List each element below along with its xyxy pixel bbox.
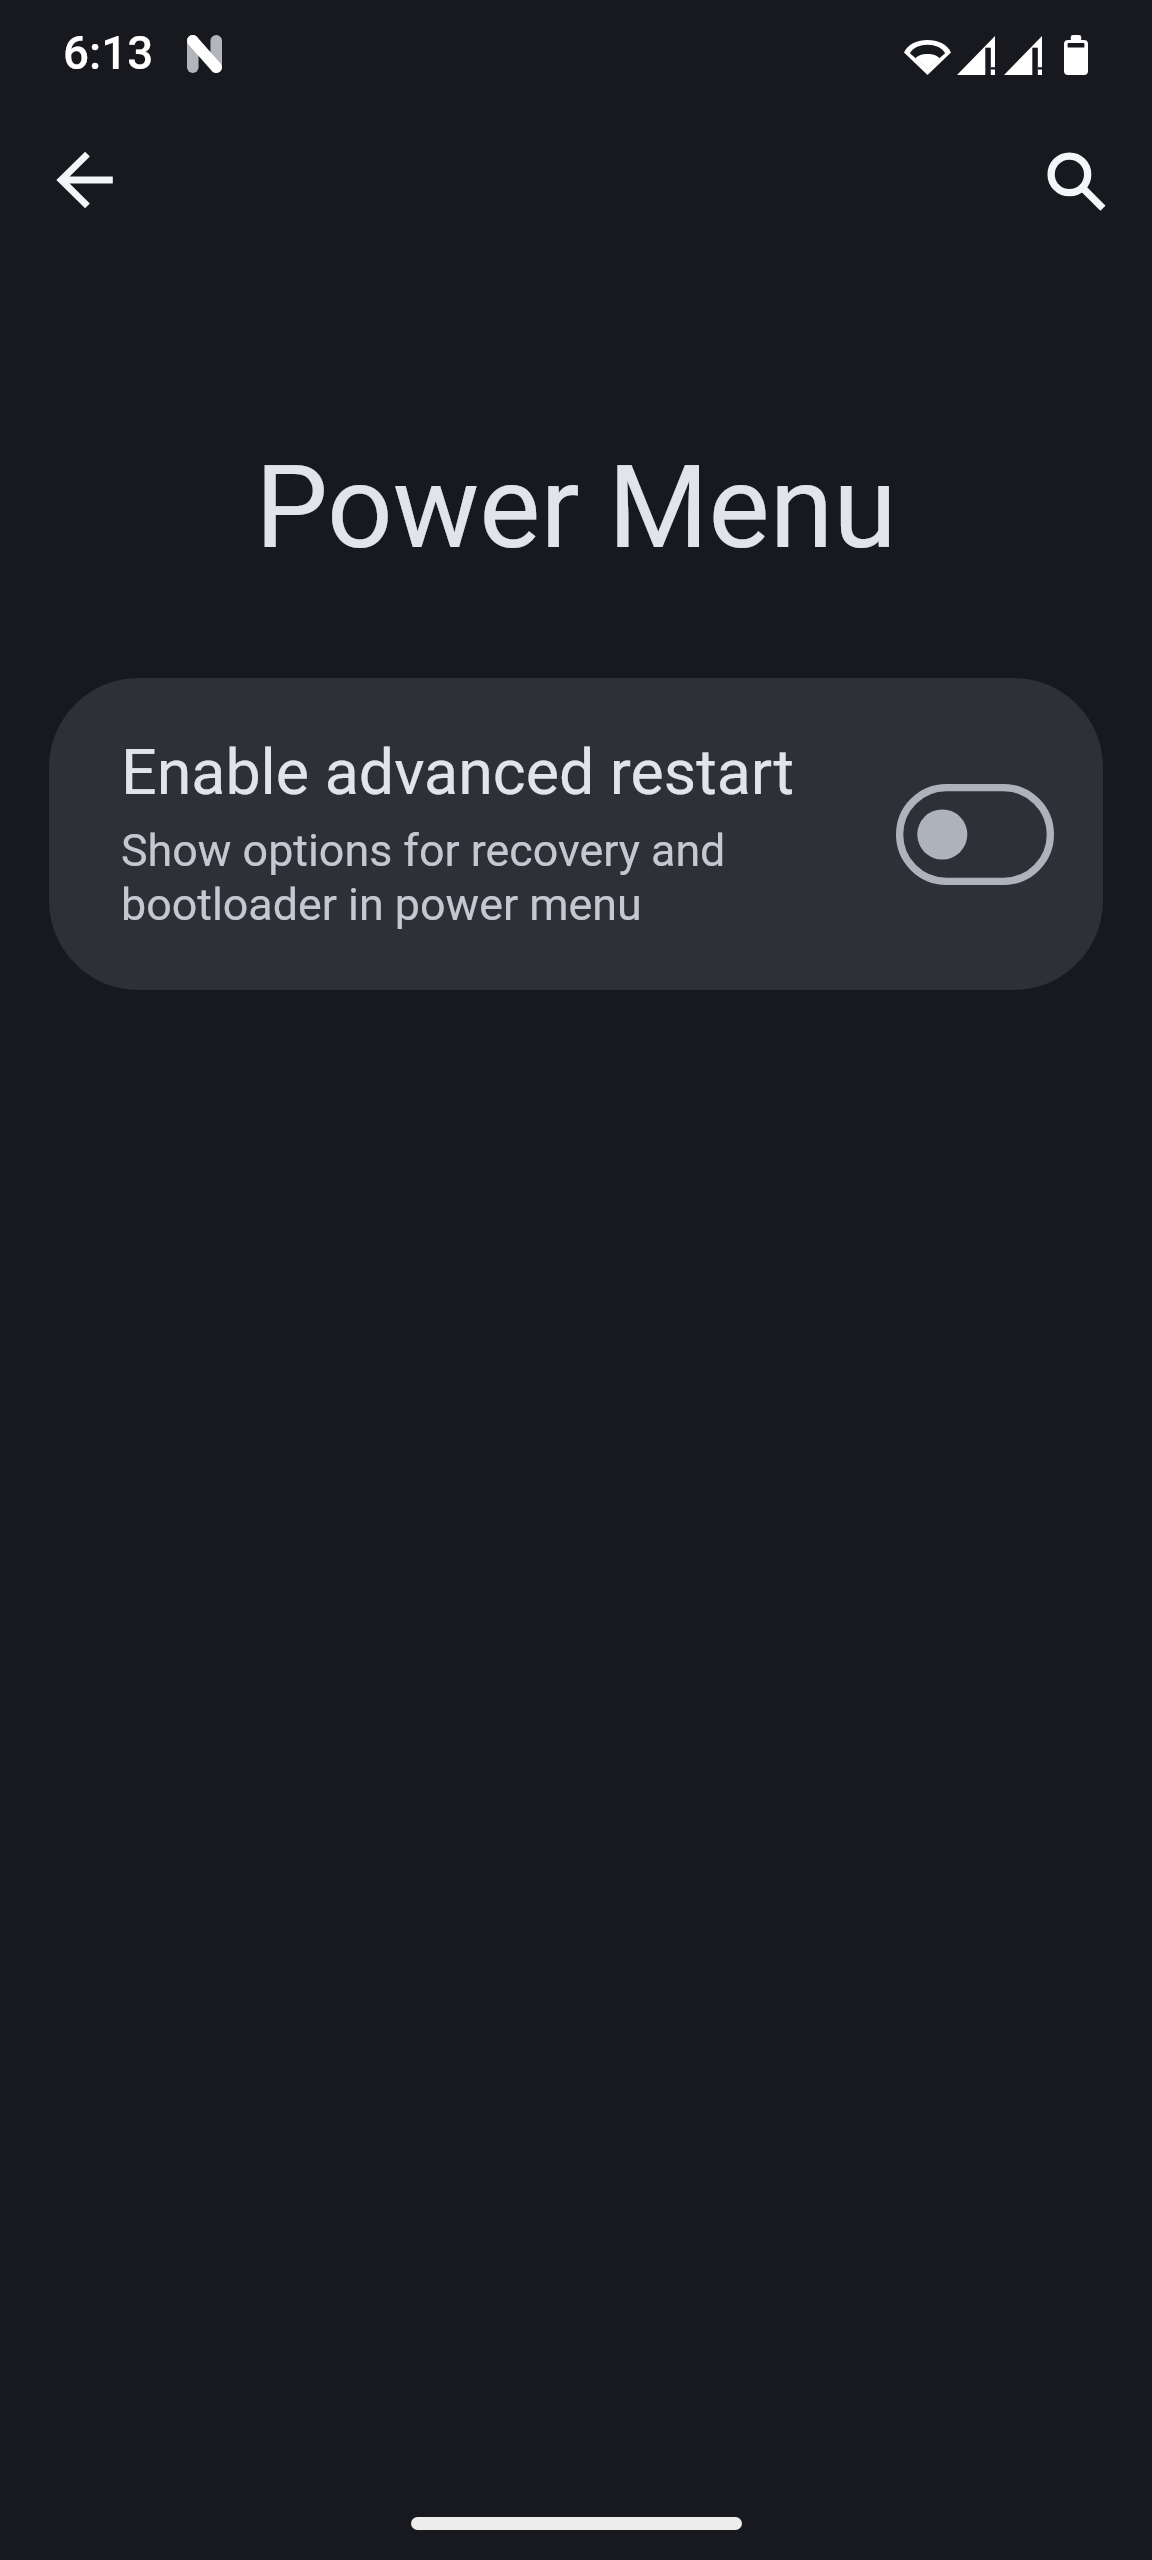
staticText: Enable advanced restart [121,736,795,810]
button[interactable]: Enable advanced restart toggle [896,784,1054,885]
button[interactable]: Search [998,103,1152,257]
staticText: Show options for recovery and bootloader… [121,824,726,931]
button[interactable]: Enable advanced restart [49,678,1103,990]
staticText: 6:13 [63,27,154,81]
button[interactable]: Back [10,103,164,257]
staticText: Power Menu [0,440,1152,575]
